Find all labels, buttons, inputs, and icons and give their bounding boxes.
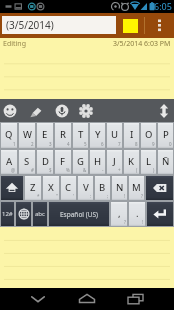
button[interactable]: Ñ (158, 150, 173, 174)
staticText: (3/5/2014) (6, 18, 54, 32)
button[interactable]: Recent apps (111, 288, 159, 310)
button[interactable]: W (19, 123, 35, 148)
button[interactable]: L (141, 150, 156, 174)
staticText: X (48, 181, 54, 194)
staticText: T (78, 128, 84, 141)
button[interactable]: Voice input (51, 99, 73, 122)
staticText: 3 (49, 141, 52, 147)
button[interactable]: Space (49, 202, 109, 226)
staticText: " (56, 193, 58, 199)
staticText: ! (142, 219, 144, 225)
staticText: B (99, 181, 106, 194)
button[interactable]: Emoji (0, 99, 21, 122)
button[interactable]: Note colour (116, 13, 144, 38)
staticText: 4 (67, 141, 70, 147)
button[interactable]: P (158, 123, 173, 148)
staticText: 9 (152, 141, 155, 147)
button[interactable]: . (129, 202, 145, 226)
button[interactable]: abc (33, 202, 47, 226)
staticText: - (102, 167, 104, 173)
staticText: * (37, 193, 40, 199)
button[interactable]: H (90, 150, 105, 174)
button[interactable]: , (111, 202, 127, 226)
staticText: Ñ (162, 155, 170, 168)
staticText: Español (US) (60, 210, 98, 219)
button[interactable]: Shift (1, 176, 23, 200)
button[interactable]: Q (1, 123, 17, 148)
staticText: O (145, 128, 153, 141)
button[interactable]: S (19, 150, 35, 174)
button[interactable]: Home (63, 288, 111, 310)
staticText: K (128, 155, 135, 168)
staticText: E (42, 128, 48, 141)
staticText: . (136, 207, 139, 220)
button[interactable]: O (141, 123, 156, 148)
button[interactable]: M (129, 176, 144, 200)
staticText: , (118, 207, 121, 220)
staticText: S (24, 155, 30, 168)
button[interactable]: Handwriting (25, 99, 47, 122)
staticText: H (94, 155, 102, 168)
staticText: abc (35, 210, 45, 218)
button[interactable]: Settings (75, 99, 97, 122)
staticText: J (113, 155, 116, 168)
staticText: 3/5/2014 6:03 PM (113, 39, 171, 49)
staticText: 1 (13, 141, 16, 147)
button[interactable]: C (61, 176, 76, 200)
staticText: @ (11, 167, 16, 173)
staticText: A (6, 155, 13, 168)
staticText: W (23, 128, 32, 141)
staticText: R (60, 128, 67, 141)
button[interactable]: Y (90, 123, 105, 148)
staticText: : (90, 193, 92, 199)
staticText: 6 (101, 141, 104, 147)
staticText: U (111, 128, 119, 141)
button[interactable]: R (55, 123, 71, 148)
staticText: ) (153, 167, 155, 173)
button[interactable]: Numbers and symbols (1, 202, 14, 226)
staticText: V (83, 181, 89, 194)
staticText: P (163, 128, 169, 141)
staticText: M (132, 181, 141, 194)
staticText: 2 (31, 141, 34, 147)
staticText: ; (107, 193, 109, 199)
button[interactable]: Change keyboard (16, 202, 31, 226)
button[interactable]: N (112, 176, 127, 200)
staticText: Y (95, 128, 101, 141)
button[interactable]: Backspace (146, 176, 173, 200)
button[interactable]: U (107, 123, 122, 148)
button[interactable]: K (124, 150, 139, 174)
button[interactable]: G (73, 150, 88, 174)
staticText: # (31, 167, 34, 173)
button[interactable]: I (124, 123, 139, 148)
staticText: Q (5, 128, 13, 141)
staticText: C (65, 181, 72, 194)
staticText: ' (73, 193, 75, 199)
button[interactable]: Z (25, 176, 41, 200)
staticText: ( (136, 167, 138, 173)
button[interactable]: A (1, 150, 17, 174)
button[interactable]: J (107, 150, 122, 174)
staticText: I (130, 128, 134, 141)
staticText: F (60, 155, 66, 168)
staticText: 6:05 (154, 0, 172, 12)
button[interactable]: B (95, 176, 110, 200)
button[interactable]: More options (145, 13, 174, 38)
button[interactable]: F (55, 150, 71, 174)
button[interactable]: D (37, 150, 53, 174)
button[interactable]: E (37, 123, 53, 148)
staticText: & (83, 167, 87, 173)
staticText: % (66, 167, 70, 173)
staticText: Editing (3, 39, 26, 49)
staticText: + (118, 167, 121, 173)
button[interactable]: Enter (147, 202, 173, 226)
staticText: N (116, 181, 124, 194)
button[interactable]: X (43, 176, 59, 200)
staticText: G (77, 155, 84, 168)
staticText: ! (124, 193, 126, 199)
button[interactable]: V (78, 176, 93, 200)
button[interactable]: T (73, 123, 88, 148)
button[interactable]: Hide keyboard (14, 288, 62, 310)
button[interactable]: Resize keyboard (153, 99, 174, 122)
button[interactable]: (3/5/2014) (2, 16, 116, 34)
